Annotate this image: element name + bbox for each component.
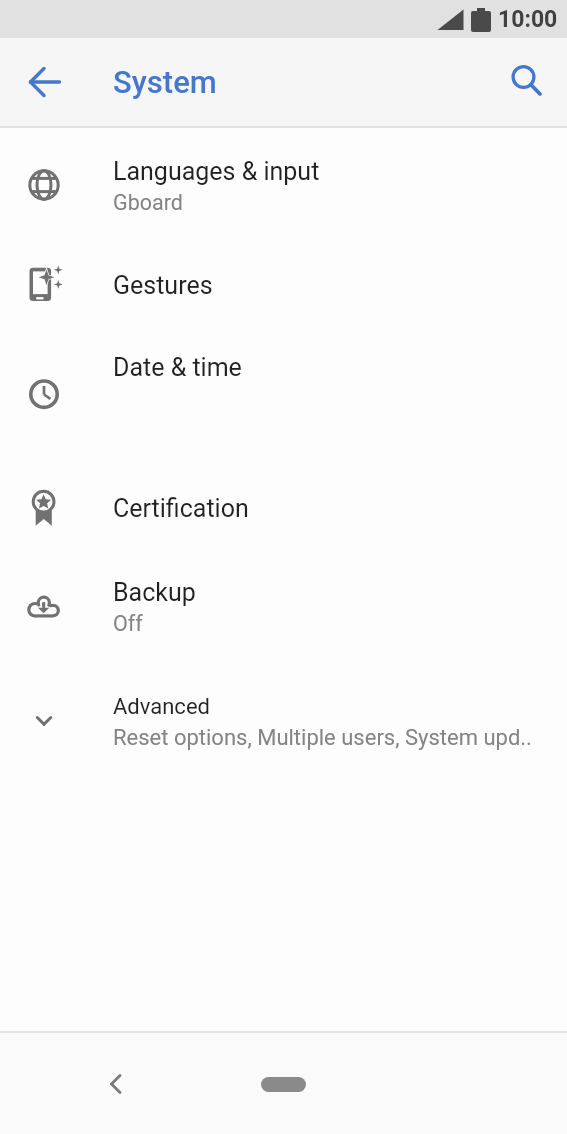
- staticText: Off: [113, 611, 143, 636]
- staticText: Certification: [113, 494, 249, 523]
- button[interactable]: Languages & input: [0, 128, 567, 241]
- staticText: Date & time: [113, 353, 242, 382]
- staticText: Advanced: [113, 694, 210, 720]
- staticText: Reset options, Multiple users, System up…: [113, 725, 532, 751]
- staticText: Backup: [113, 578, 196, 607]
- button[interactable]: [503, 57, 553, 107]
- staticText: System: [113, 64, 217, 100]
- staticText: 10:00: [498, 6, 558, 33]
- button[interactable]: Advanced: [0, 666, 567, 779]
- button[interactable]: Date & time: [0, 329, 567, 442]
- button[interactable]: [20, 57, 70, 107]
- button[interactable]: Backup: [0, 552, 567, 666]
- staticText: Gboard: [113, 190, 183, 215]
- button[interactable]: Certification: [0, 464, 567, 552]
- staticText: Gestures: [113, 271, 213, 300]
- button[interactable]: [92, 1060, 140, 1108]
- staticText: Languages & input: [113, 157, 320, 186]
- button[interactable]: [261, 1077, 306, 1092]
- button[interactable]: Gestures: [0, 241, 567, 329]
